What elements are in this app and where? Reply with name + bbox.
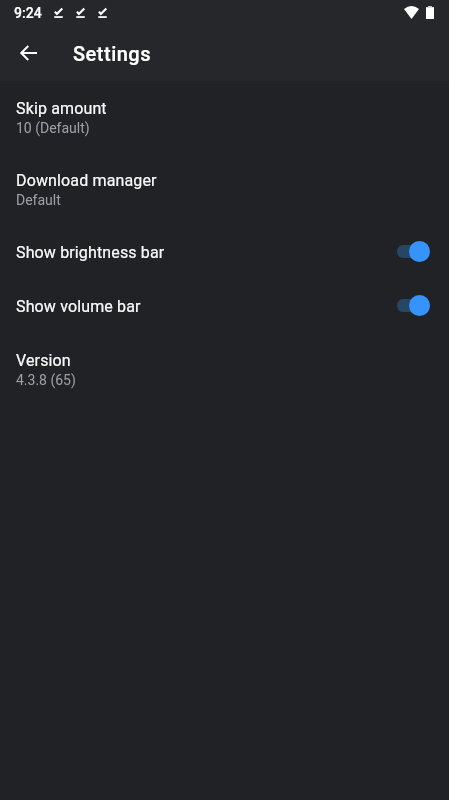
- button[interactable]: Show brightness bar: [0, 225, 449, 279]
- staticText: Show volume bar: [16, 297, 397, 316]
- staticText: Settings: [73, 42, 152, 65]
- staticText: 10 (Default): [16, 120, 90, 136]
- staticText: 9:24: [14, 5, 42, 21]
- button[interactable]: Back: [8, 33, 48, 73]
- staticText: Skip amount: [16, 99, 107, 118]
- button[interactable]: Download manager: [0, 153, 449, 225]
- staticText: 4.3.8 (65): [16, 372, 76, 388]
- staticText: Show brightness bar: [16, 243, 397, 262]
- button[interactable]: Skip amount: [0, 81, 449, 153]
- button[interactable]: Version: [0, 333, 449, 405]
- staticText: Default: [16, 192, 61, 208]
- staticText: Download manager: [16, 171, 157, 190]
- button[interactable]: Show volume bar: [0, 279, 449, 333]
- staticText: Version: [16, 351, 71, 370]
